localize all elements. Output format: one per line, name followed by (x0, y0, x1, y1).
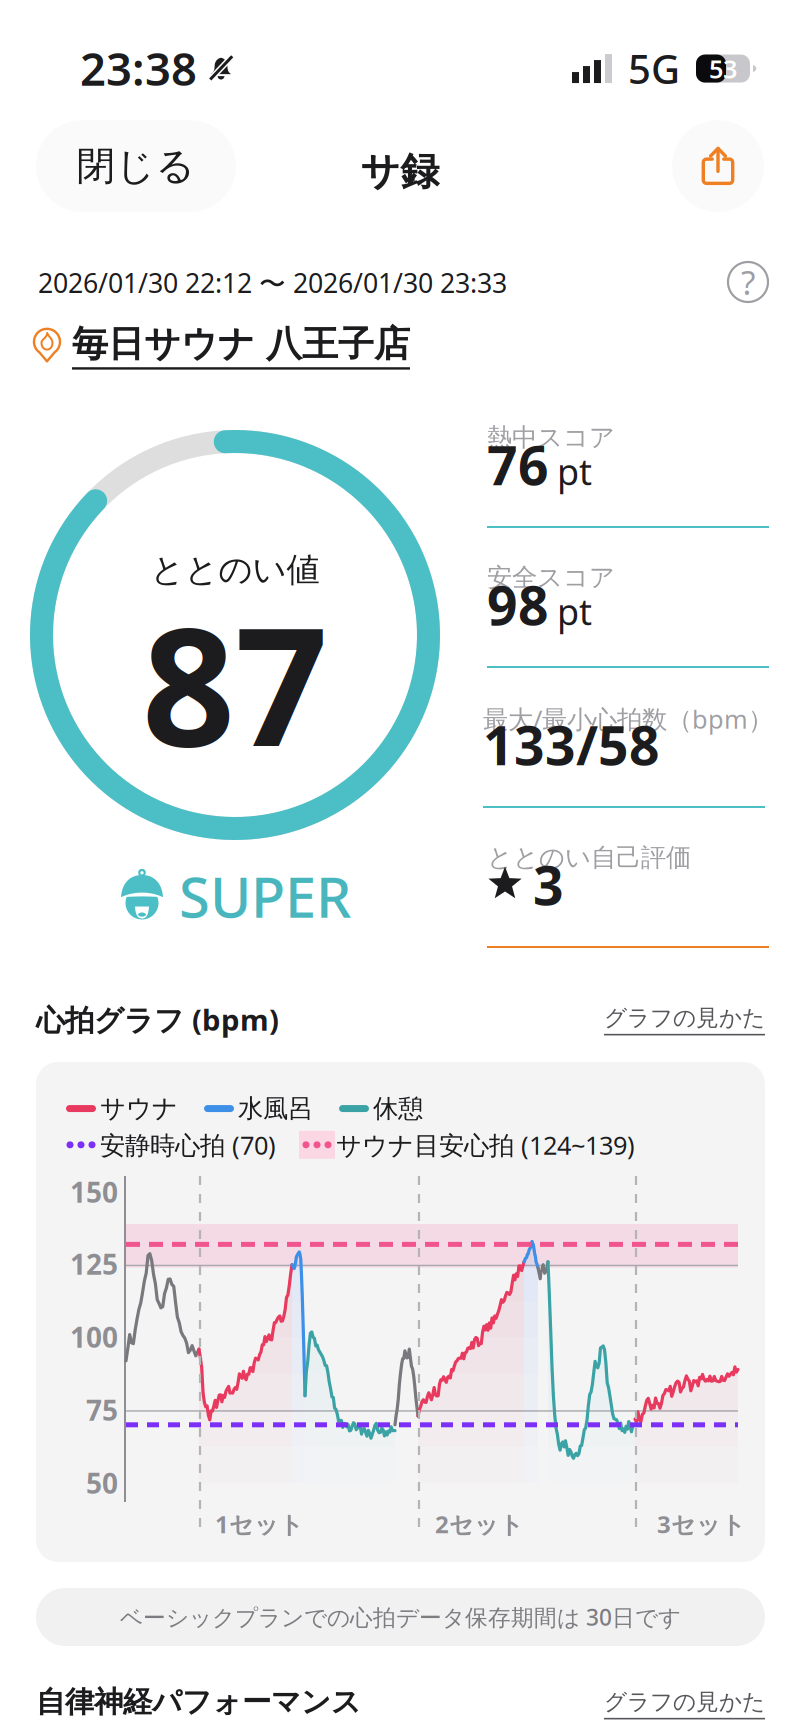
staticText: 3 (533, 849, 564, 920)
button[interactable]: 閉じる (36, 120, 236, 212)
staticText: 自律神経パフォーマンス (36, 1684, 361, 1720)
staticText: ととのい自己評価 (487, 842, 691, 873)
staticText: 熱中スコア (487, 422, 615, 453)
staticText: グラフの見かた (604, 1004, 765, 1032)
staticText: グラフの見かた (604, 1688, 765, 1716)
staticText: 76 (487, 429, 549, 500)
button[interactable]: 共有 (672, 120, 764, 212)
staticText: 87 (142, 575, 328, 791)
staticText: 安全スコア (487, 562, 615, 593)
staticText: pt (557, 587, 592, 635)
staticText: 98 (487, 569, 549, 640)
staticText: ととのい値 (150, 549, 319, 590)
button[interactable]: グラフの見かた (604, 1004, 765, 1035)
staticText: 3セット (657, 1508, 746, 1540)
staticText: 最大/最小心拍数（bpm） (483, 702, 773, 736)
staticText: 5G (628, 42, 680, 95)
staticText: サウナ (100, 1093, 178, 1124)
staticText: 1セット (215, 1508, 304, 1540)
staticText: 安静時心拍 (70) (100, 1128, 276, 1162)
staticText: 75 (86, 1391, 118, 1429)
staticText: SUPER (179, 859, 351, 933)
staticText: 100 (70, 1318, 118, 1356)
button[interactable]: 毎日サウナ 八王子店 (30, 322, 410, 370)
staticText: 125 (70, 1245, 118, 1283)
staticText: ベーシックプランでの心拍データ保存期間は 30日です (120, 1602, 681, 1632)
staticText: 150 (70, 1173, 118, 1211)
staticText: 毎日サウナ 八王子店 (72, 322, 410, 366)
staticText: 2セット (435, 1508, 524, 1540)
staticText: 閉じる (76, 142, 195, 190)
staticText: 133/58 (483, 709, 660, 780)
staticText: 休憩 (373, 1093, 423, 1124)
staticText: 心拍グラフ (bpm) (36, 1000, 279, 1039)
staticText: 50 (86, 1464, 118, 1502)
staticText: 53 (709, 52, 737, 85)
button[interactable]: ヘルプ (728, 262, 768, 302)
staticText: pt (557, 447, 592, 495)
staticText: 水風呂 (238, 1093, 313, 1124)
button[interactable]: グラフの見かた (604, 1688, 765, 1719)
staticText: サ録 (360, 148, 439, 195)
staticText: ? (741, 260, 755, 304)
staticText: 2026/01/30 22:12 〜 2026/01/30 23:33 (38, 265, 507, 301)
staticText: サウナ目安心拍 (124~139) (336, 1128, 635, 1162)
staticText: 23:38 (80, 38, 197, 98)
